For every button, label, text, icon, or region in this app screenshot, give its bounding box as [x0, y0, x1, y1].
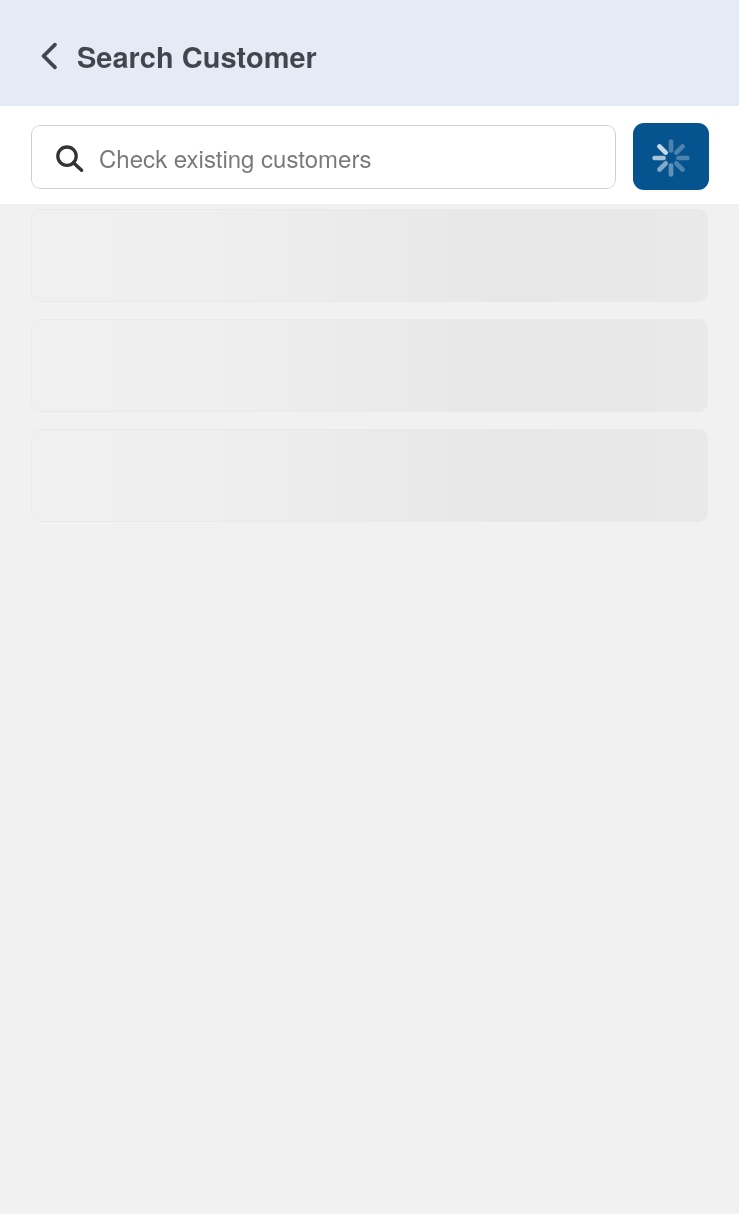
- button[interactable]: Search: [633, 123, 709, 190]
- button[interactable]: Back: [26, 33, 72, 79]
- button[interactable]: [31, 429, 708, 522]
- staticText: Check existing customers: [99, 140, 372, 174]
- button[interactable]: [31, 209, 708, 302]
- button[interactable]: Check existing customers: [31, 125, 616, 189]
- button[interactable]: [31, 319, 708, 412]
- staticText: Search Customer: [77, 35, 317, 77]
